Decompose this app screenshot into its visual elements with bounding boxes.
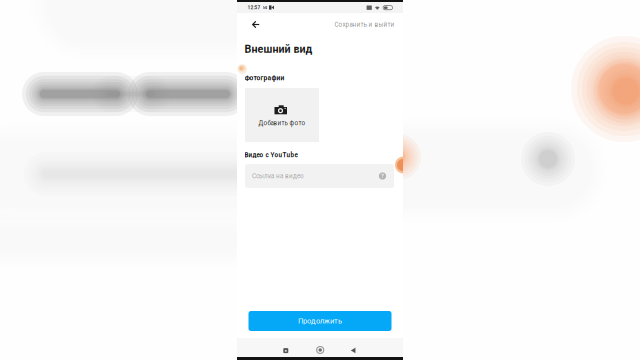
button[interactable]: Ссылка на видео [245, 164, 394, 188]
staticText: Внешний вид [244, 43, 312, 55]
staticText: Добавить фото [258, 119, 305, 127]
button[interactable]: Добавить фото [245, 88, 319, 142]
button[interactable]: Recents [279, 345, 293, 357]
staticText: Видео с YouTube [244, 151, 297, 159]
staticText: Ссылка на видео [252, 172, 304, 180]
staticText: 12:57 [248, 5, 261, 10]
button[interactable]: Сохранить и выйти [245, 13, 394, 36]
staticText: ? [381, 172, 384, 179]
staticText: 54 [263, 5, 267, 10]
staticText: Фотографии [244, 74, 284, 82]
button[interactable]: Продолжить [248, 311, 391, 331]
staticText: Продолжить [298, 316, 342, 325]
staticText: Сохранить и выйти [334, 21, 394, 28]
button[interactable]: Home [313, 343, 327, 357]
button[interactable]: Назад [246, 13, 264, 36]
button[interactable]: Back [346, 344, 360, 356]
